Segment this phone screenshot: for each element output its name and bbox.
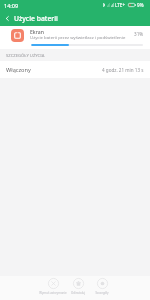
staticText: Szczegóły	[95, 291, 109, 295]
button[interactable]: Wymuś zatrzymanie	[39, 278, 67, 295]
button[interactable]: Odinstaluj	[68, 278, 88, 295]
staticText: Użycie baterii	[14, 14, 58, 23]
button[interactable]: Włączony	[0, 61, 150, 78]
staticText: Odinstaluj	[71, 291, 85, 295]
staticText: SZCZEGÓŁY UŻYCIA	[6, 53, 45, 59]
button[interactable]: Back	[0, 10, 14, 26]
staticText: 31%	[134, 31, 144, 37]
staticText: Ekran	[30, 29, 44, 36]
staticText: Włączony	[6, 66, 31, 74]
staticText: 14:09	[4, 2, 19, 9]
button[interactable]: Szczegóły	[92, 278, 112, 295]
staticText: LTE+	[115, 2, 126, 8]
staticText: Wymuś zatrzymanie	[39, 291, 67, 295]
staticText: 9%	[137, 2, 144, 8]
staticText: 4 godz. 21 min 13 s	[102, 67, 144, 73]
staticText: Użycie baterii przez wyświetlacz i podśw…	[30, 34, 126, 40]
